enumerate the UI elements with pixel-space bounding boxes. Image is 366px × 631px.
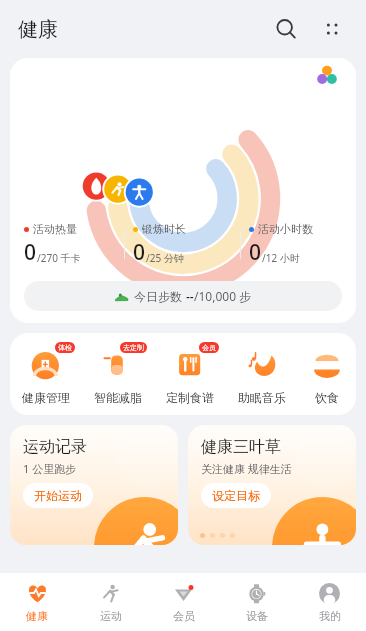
staticText: 0 xyxy=(133,238,146,267)
staticText: 体检 xyxy=(58,343,72,352)
button[interactable]: 体检 xyxy=(10,345,82,405)
staticText: 我的 xyxy=(319,609,341,623)
button[interactable]: 助眠音乐 xyxy=(226,345,298,405)
button[interactable]: 锻炼时长 xyxy=(125,213,240,275)
staticText: -- xyxy=(186,288,194,304)
staticText: 定制食谱 xyxy=(166,390,214,405)
staticText: 去定制 xyxy=(123,343,144,352)
button[interactable]: 设定目标 xyxy=(201,483,271,508)
staticText: 设备 xyxy=(246,609,268,623)
staticText: 健康 xyxy=(18,17,58,42)
button[interactable]: 去定制 xyxy=(82,345,154,405)
button[interactable]: 健康 xyxy=(0,573,74,631)
button[interactable]: 饮食 xyxy=(298,345,356,405)
button[interactable]: 活动热量 xyxy=(10,213,124,275)
staticText: 活动热量 xyxy=(33,222,77,236)
staticText: 活动小时数 xyxy=(258,222,313,236)
button[interactable]: 运动 xyxy=(74,573,147,631)
staticText: 健康管理 xyxy=(22,390,70,405)
button[interactable]: Search xyxy=(266,9,306,49)
staticText: 会员 xyxy=(173,609,195,623)
button[interactable]: 开始运动 xyxy=(23,483,93,508)
staticText: 运动记录 xyxy=(23,437,87,457)
staticText: 智能减脂 xyxy=(94,390,142,405)
staticText: 1 公里跑步 xyxy=(23,461,77,476)
button[interactable]: 我的 xyxy=(293,573,366,631)
button[interactable]: 活动热量 xyxy=(10,58,356,323)
staticText: 助眠音乐 xyxy=(238,390,286,405)
staticText: /270 千卡 xyxy=(37,251,81,265)
staticText: 健康 xyxy=(26,609,48,623)
staticText: 运动 xyxy=(100,609,122,623)
button[interactable]: 会员 xyxy=(147,573,220,631)
staticText: 0 xyxy=(24,238,37,267)
staticText: 关注健康 规律生活 xyxy=(201,461,292,476)
staticText: /25 分钟 xyxy=(146,251,184,265)
button[interactable]: Activity rings detail xyxy=(298,58,356,92)
button[interactable]: 设备 xyxy=(220,573,293,631)
staticText: /12 小时 xyxy=(262,251,300,265)
staticText: 今日步数 xyxy=(134,288,186,304)
staticText: 开始运动 xyxy=(34,488,82,503)
staticText: /10,000 步 xyxy=(194,288,252,304)
button[interactable]: 今日步数 xyxy=(24,281,342,311)
staticText: 设定目标 xyxy=(212,488,260,503)
button[interactable]: More options xyxy=(312,9,352,49)
staticText: 会员 xyxy=(202,343,216,352)
staticText: 饮食 xyxy=(315,390,339,405)
button[interactable]: 活动小时数 xyxy=(241,213,356,275)
staticText: 0 xyxy=(249,238,262,267)
staticText: 健康三叶草 xyxy=(201,437,281,457)
staticText: 锻炼时长 xyxy=(142,222,186,236)
button[interactable]: 会员 xyxy=(154,345,226,405)
button[interactable]: 健康三叶草 xyxy=(188,425,356,545)
button[interactable]: 运动记录 xyxy=(10,425,178,545)
